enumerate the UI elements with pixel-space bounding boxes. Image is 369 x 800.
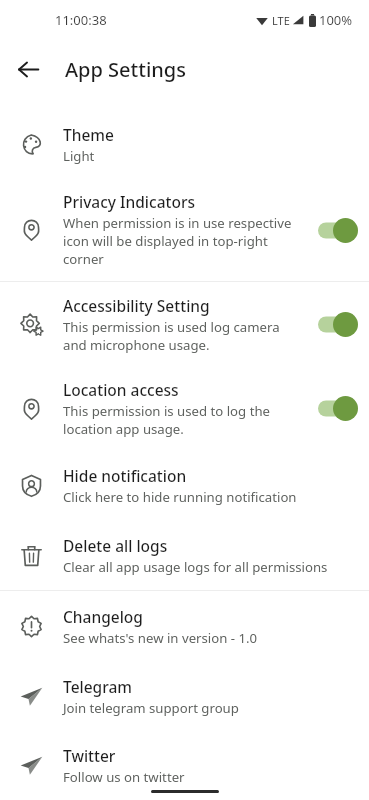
staticText: Delete all logs: [63, 535, 168, 556]
staticText: Light: [63, 147, 95, 165]
staticText: When permission is in use respective ico…: [63, 214, 301, 268]
button[interactable]: Theme: [0, 110, 369, 178]
staticText: Follow us on twitter: [63, 768, 185, 786]
button[interactable]: Changelog: [0, 591, 369, 661]
staticText: LTE: [272, 13, 290, 28]
staticText: This permission is used log camera and m…: [63, 318, 301, 354]
staticText: Click here to hide running notification: [63, 488, 297, 506]
staticText: 11:00:38: [55, 11, 107, 29]
button[interactable]: Privacy Indicators: [0, 178, 369, 281]
staticText: Clear all app usage logs for all permiss…: [63, 558, 328, 576]
button[interactable]: Toggle Accessibility Setting: [307, 301, 369, 347]
staticText: Telegram: [63, 676, 133, 697]
staticText: Privacy Indicators: [63, 191, 196, 212]
button[interactable]: Accessibility Setting: [0, 282, 369, 366]
button[interactable]: Telegram: [0, 661, 369, 731]
staticText: App Settings: [65, 56, 186, 83]
button[interactable]: Delete all logs: [0, 520, 369, 590]
button[interactable]: Location access: [0, 366, 369, 450]
staticText: Location access: [63, 379, 179, 400]
staticText: Hide notification: [63, 465, 187, 486]
button[interactable]: Toggle Location access: [307, 385, 369, 431]
staticText: Changelog: [63, 606, 143, 627]
staticText: See whats's new in version - 1.0: [63, 629, 258, 647]
staticText: Join telegram support group: [63, 699, 239, 717]
button[interactable]: Back: [0, 41, 56, 97]
staticText: Theme: [63, 124, 114, 145]
staticText: Accessibility Setting: [63, 295, 210, 316]
button[interactable]: Toggle Privacy Indicators: [307, 207, 369, 253]
staticText: Twitter: [63, 745, 116, 766]
button[interactable]: Hide notification: [0, 450, 369, 520]
staticText: 100%: [319, 11, 353, 29]
staticText: This permission is used to log the locat…: [63, 402, 301, 438]
button[interactable]: Twitter: [0, 731, 369, 800]
